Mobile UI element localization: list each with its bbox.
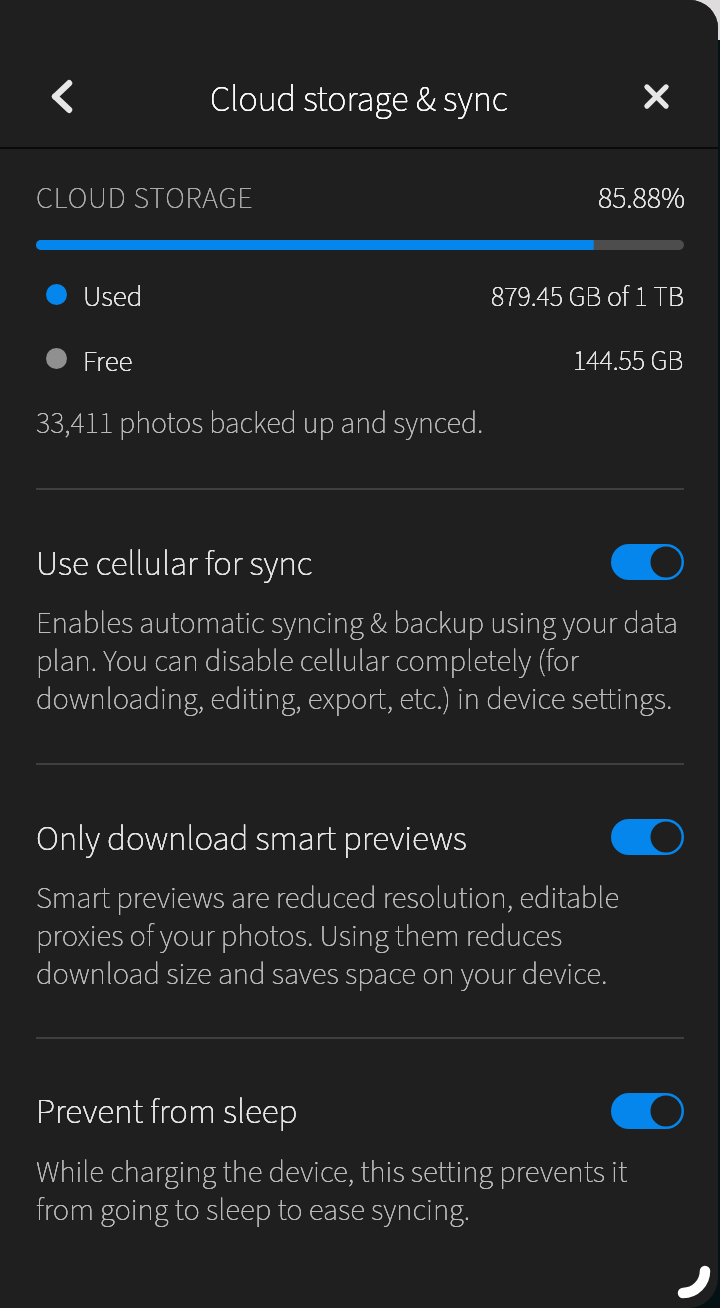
staticText: Use cellular for sync: [36, 539, 313, 589]
staticText: Enables automatic syncing & backup using…: [36, 602, 688, 722]
staticText: Use cellular for sync: [36, 539, 313, 589]
staticText: 879.45 GB of 1 TB: [491, 277, 684, 317]
button[interactable]: Close: [632, 72, 681, 121]
staticText: Prevent from sleep: [36, 1087, 298, 1137]
staticText: Used: [83, 276, 143, 317]
staticText: Smart previews are reduced resolution, e…: [36, 877, 688, 997]
staticText: While charging the device, this setting …: [36, 1151, 688, 1233]
staticText: 144.55 GB: [573, 341, 684, 381]
staticText: Cloud storage & sync: [210, 74, 508, 125]
button[interactable]: Back: [37, 72, 86, 121]
staticText: Used: [83, 276, 143, 317]
staticText: Free: [83, 341, 133, 382]
staticText: 144.55 GB: [573, 341, 684, 381]
staticText: Cloud storage & sync: [210, 74, 508, 125]
staticText: While charging the device, this setting …: [36, 1151, 688, 1233]
staticText: Only download smart previews: [36, 814, 467, 864]
staticText: CLOUD STORAGE: [36, 177, 254, 220]
button[interactable]: Toggle Only download smart previews: [611, 819, 684, 855]
staticText: Prevent from sleep: [36, 1087, 298, 1137]
staticText: 33,411 photos backed up and synced.: [36, 402, 484, 445]
staticText: 85.88%: [598, 177, 685, 220]
staticText: 85.88%: [598, 177, 685, 220]
button[interactable]: [0, 765, 718, 1037]
staticText: CLOUD STORAGE: [36, 177, 254, 220]
button[interactable]: [0, 490, 718, 763]
staticText: Enables automatic syncing & backup using…: [36, 602, 688, 722]
staticText: 33,411 photos backed up and synced.: [36, 402, 484, 445]
staticText: Free: [83, 341, 133, 382]
button[interactable]: Toggle Prevent from sleep: [611, 1093, 684, 1129]
button[interactable]: Toggle Use cellular for sync: [611, 544, 684, 580]
staticText: 879.45 GB of 1 TB: [491, 277, 684, 317]
staticText: Smart previews are reduced resolution, e…: [36, 877, 688, 997]
staticText: Only download smart previews: [36, 814, 467, 864]
button[interactable]: [0, 1039, 718, 1269]
